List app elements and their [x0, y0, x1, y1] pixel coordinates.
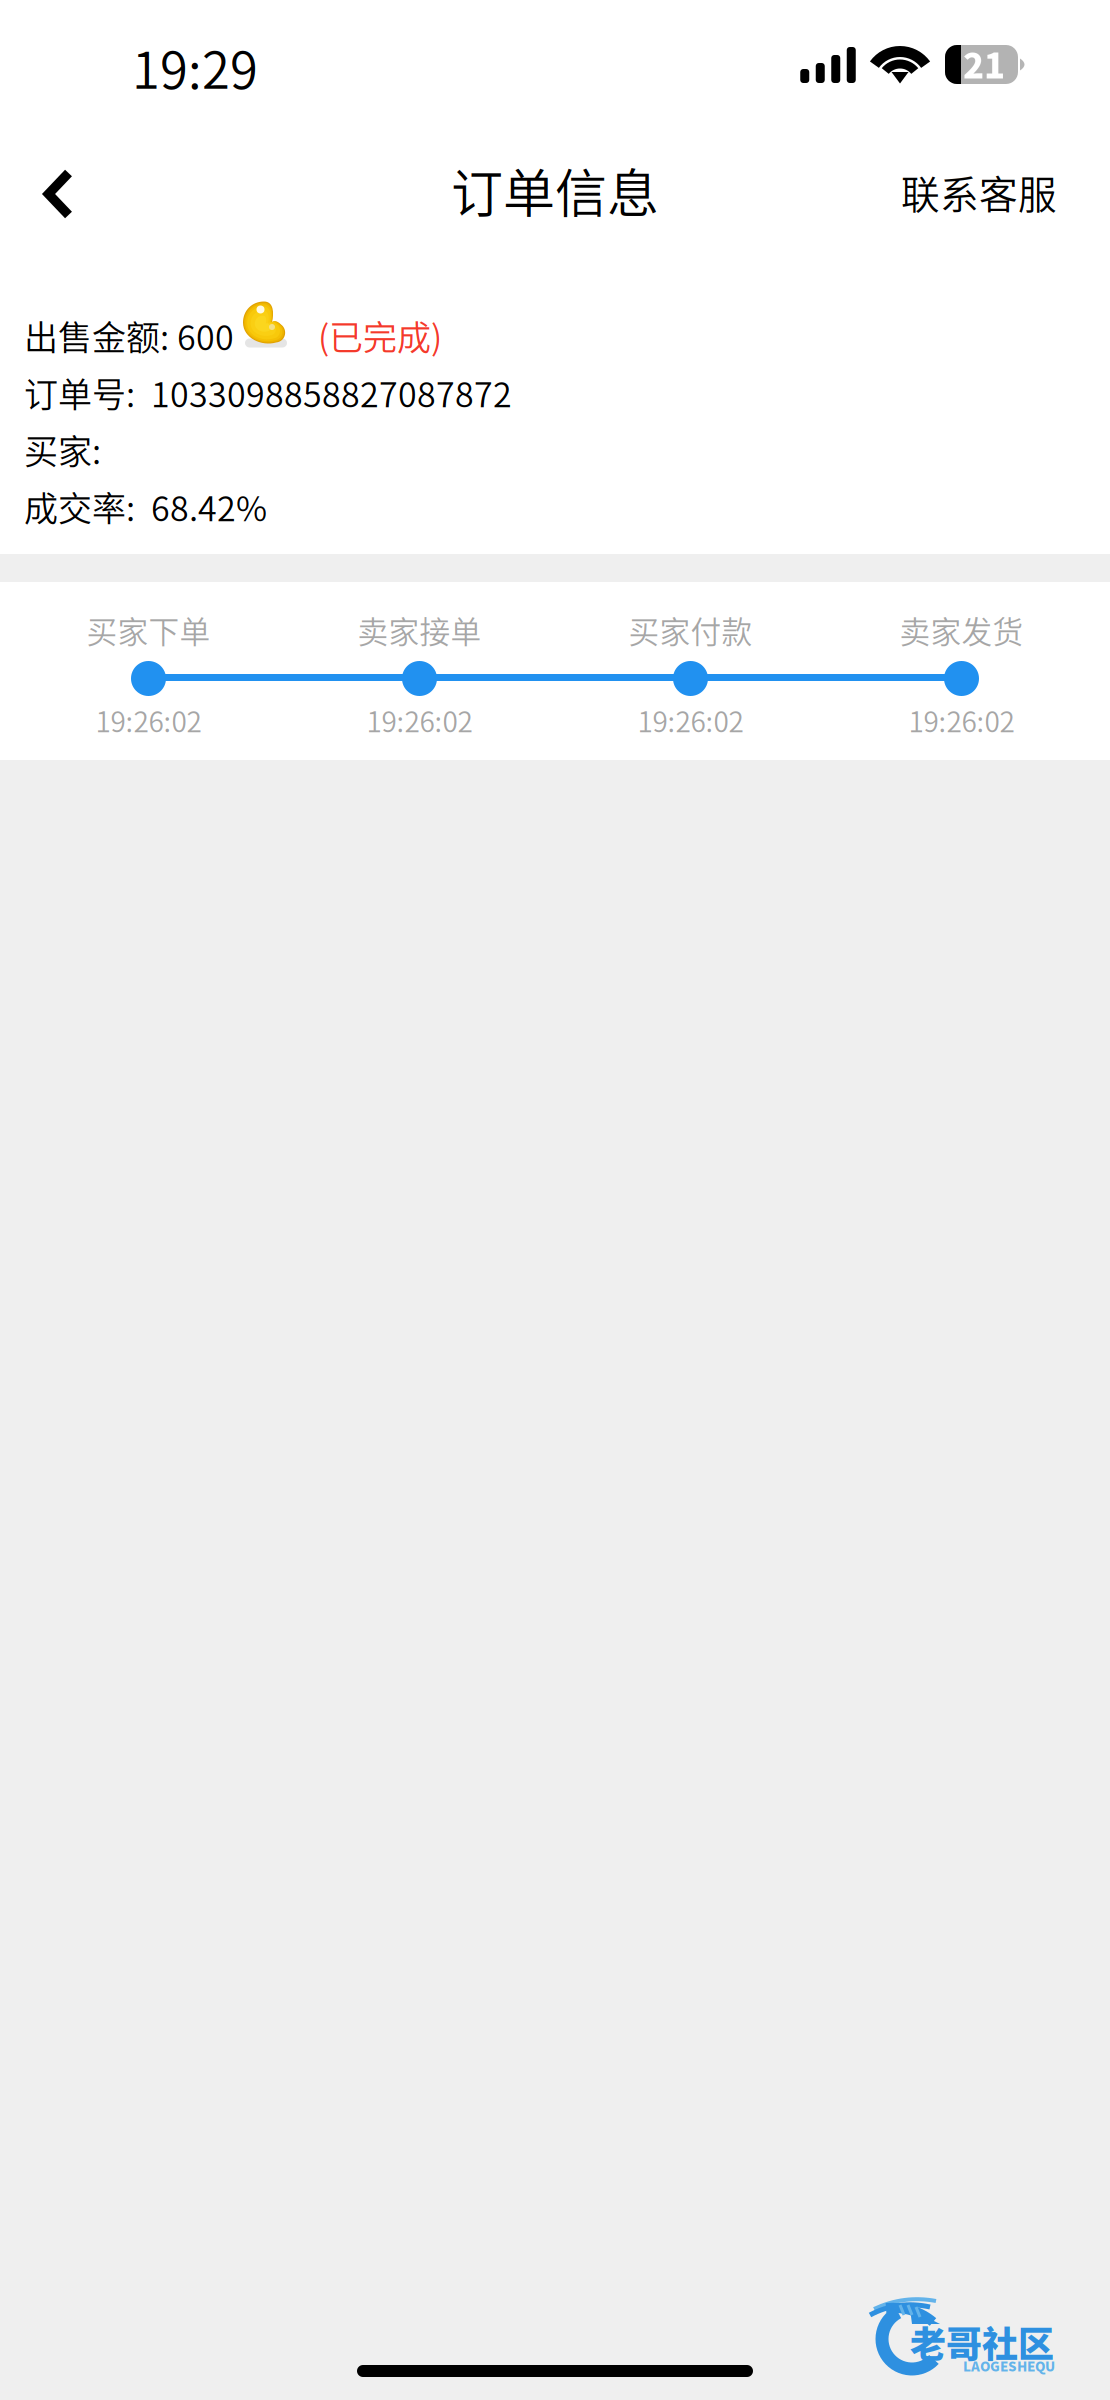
staticText: 买家付款	[628, 608, 752, 652]
button[interactable]: 联系客服	[901, 132, 1057, 238]
button[interactable]: 返回	[0, 132, 112, 238]
staticText: 卖家发货	[899, 608, 1023, 652]
staticText: LAOGESHEQU	[963, 2356, 1055, 2375]
staticText: 21	[963, 38, 1005, 89]
staticText: 订单号: 1033098858827087872	[24, 368, 512, 417]
staticText: 19:26:02	[95, 700, 201, 740]
staticText: 联系客服	[901, 164, 1057, 220]
staticText: 出售金额: 600	[24, 311, 234, 360]
staticText: 买家下单	[86, 608, 210, 652]
staticText: 卖家接单	[357, 608, 481, 652]
staticText: (已完成)	[318, 311, 442, 360]
staticText: 订单信息	[451, 152, 659, 228]
staticText: 19:26:02	[366, 700, 472, 740]
staticText: 买家:	[24, 425, 101, 474]
staticText: 19:26:02	[908, 700, 1014, 740]
staticText: 老哥社区	[910, 2316, 1054, 2368]
staticText: 19:29	[132, 30, 258, 103]
staticText: 19:26:02	[637, 700, 743, 740]
staticText: 成交率: 68.42%	[24, 482, 267, 531]
